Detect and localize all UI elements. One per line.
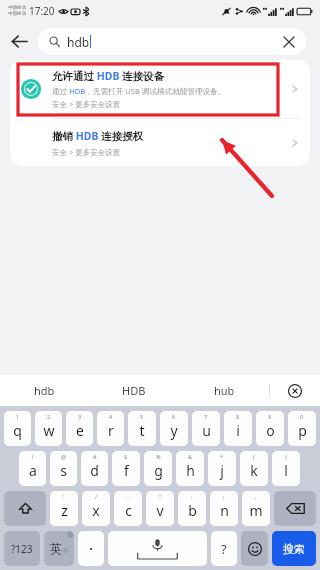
staticText: 允许通过 HDB 连接设备 [52,69,165,83]
staticText: v [156,501,164,520]
button[interactable]: 0 [288,411,316,446]
button[interactable]: " [146,491,174,526]
staticText: @ [61,453,66,460]
staticText: 6 [172,413,176,420]
staticText: f [124,461,129,480]
button[interactable]: Close suggestions [270,375,320,406]
button[interactable]: Back [0,22,38,60]
button[interactable]: hdb [0,375,89,406]
staticText: HDB [122,383,146,398]
button[interactable]: ) [272,451,300,486]
staticText: hdb [67,34,90,50]
staticText: b [188,501,197,520]
button[interactable]: ' [50,491,78,526]
staticText: m [249,501,263,520]
button[interactable]: : [178,491,206,526]
button[interactable]: 6 [160,411,188,446]
staticText: 中国移动 [8,11,26,17]
staticText: * [220,453,224,460]
staticText: - [127,493,129,500]
staticText: 中国移动 [8,5,26,11]
staticText: k [250,461,258,480]
staticText: 2 [47,413,51,420]
staticText: ?123 [11,542,33,556]
staticText: ? [221,540,227,558]
staticText: w [43,421,55,440]
staticText: s [60,461,67,480]
button[interactable]: Emoji [241,531,268,566]
button[interactable]: 2 [35,411,62,446]
button[interactable]: 9 [256,411,284,446]
staticText: $ [124,453,128,460]
button[interactable]: ( [240,451,268,486]
staticText: ! [32,453,34,460]
staticText: 安全 > 更多安全设置 [52,147,121,157]
button[interactable] [78,531,104,566]
other: Space [108,531,207,566]
staticText: u [202,421,211,440]
button[interactable]: 7 [192,411,220,446]
other: Shift [18,501,33,516]
button[interactable]: 允许通过 HDB 连接设备 [10,60,310,118]
staticText: : [191,493,193,500]
button[interactable]: hub [179,375,269,406]
button[interactable]: * [208,451,236,486]
button[interactable]: $ [112,451,140,486]
staticText: 3 [78,413,82,420]
staticText: 撤销 HDB 连接授权 [52,129,144,143]
button[interactable]: @ [50,451,77,486]
staticText: " [159,493,162,500]
staticText: n [220,501,229,520]
staticText: o [266,421,275,440]
staticText: r [108,421,114,440]
button[interactable]: 4 [97,411,124,446]
button[interactable]: / [82,491,110,526]
staticText: i [236,421,240,440]
staticText: % [156,453,161,460]
button[interactable]: 3 [66,411,93,446]
staticText: ; [223,493,225,500]
button[interactable]: 8 [224,411,252,446]
button[interactable]: Space [108,531,207,566]
button[interactable]: hdb [38,28,306,55]
button[interactable]: - [114,491,142,526]
staticText: d [90,461,99,480]
button[interactable]: 5 [128,411,156,446]
button[interactable]: 撤销 HDB 连接授权 [10,119,310,166]
staticText: 0 [300,413,304,420]
staticText: 安全 > 更多安全设置 [52,99,121,109]
staticText: 8 [236,413,240,420]
staticText: g [154,461,163,480]
button[interactable]: ; [210,491,238,526]
staticText: z [61,501,68,520]
button[interactable]: , [242,491,270,526]
button[interactable]: Language [44,531,74,566]
staticText: hdb [34,383,55,398]
button[interactable]: ? [211,531,237,566]
button[interactable]: # [81,451,108,486]
staticText: # [93,453,97,460]
button[interactable]: % [144,451,172,486]
staticText: hub [214,383,235,398]
button[interactable]: Backspace [274,491,316,526]
button[interactable]: Shift [4,491,46,526]
staticText: x [92,501,100,520]
button[interactable]: 搜索 [272,531,316,566]
staticText: 搜索 [283,542,305,556]
staticText: q [13,421,22,440]
staticText: 通过 HDB，无需打开 USB 调试模式就能管理设备。 [52,86,226,96]
staticText: / [95,493,98,500]
button[interactable]: & [176,451,204,486]
staticText: a [29,461,37,480]
button[interactable]: HDB [89,375,179,406]
other: Language [44,531,74,566]
button[interactable]: ?123 [4,531,40,566]
button[interactable]: ! [19,451,46,486]
button[interactable]: 1 [4,411,31,446]
button[interactable]: Clear [276,29,302,55]
staticText: ' [63,493,65,500]
staticText: c [125,501,132,520]
other: Backspace [286,502,305,515]
staticText: 9 [268,413,272,420]
staticText: e [76,421,84,440]
